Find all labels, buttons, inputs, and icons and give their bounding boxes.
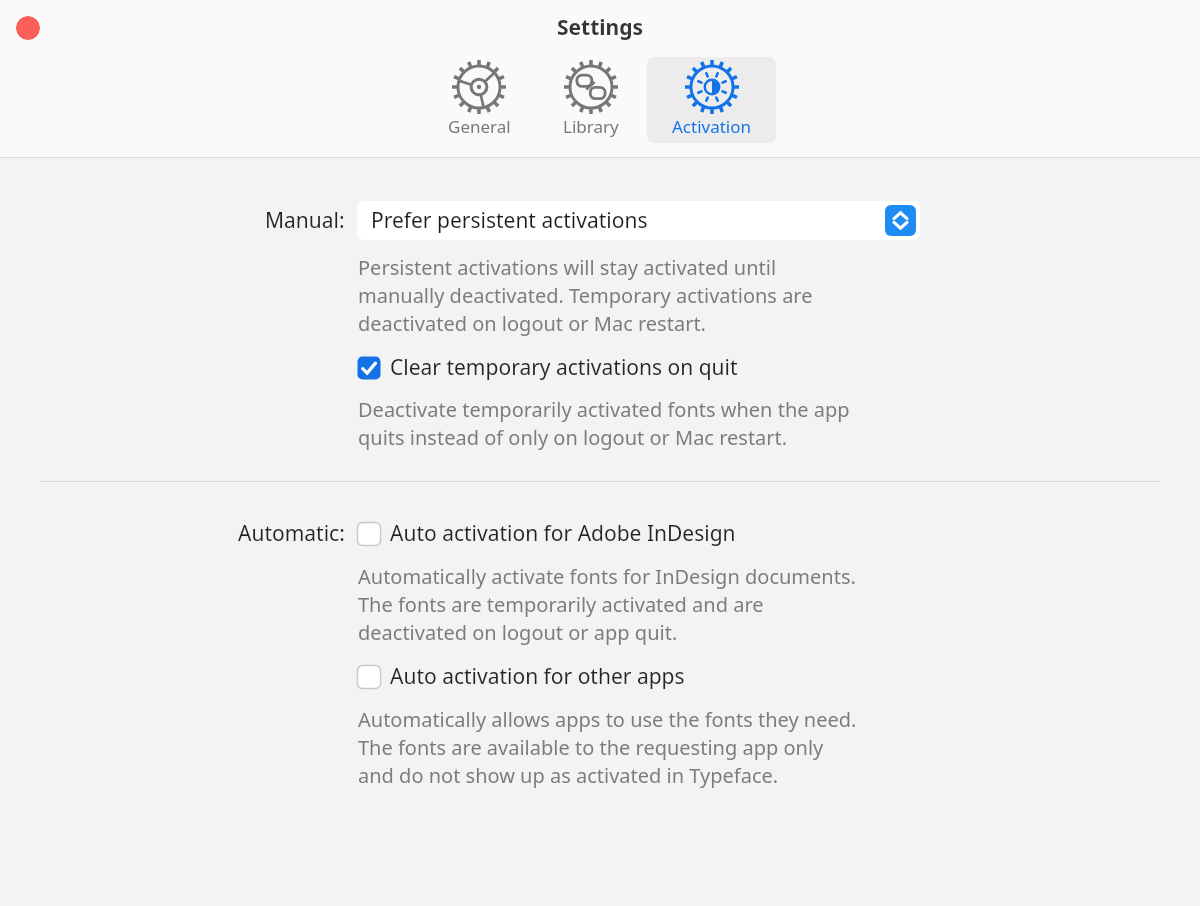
staticText: Activation xyxy=(672,115,752,138)
button[interactable]: Auto activation for Adobe InDesign xyxy=(357,519,736,548)
button[interactable]: General xyxy=(423,57,535,143)
staticText: General xyxy=(448,115,511,138)
staticText: Manual: xyxy=(265,206,345,235)
staticText: Deactivate temporarily activated fonts w… xyxy=(358,396,850,451)
staticText: Automatic: xyxy=(238,519,345,548)
button[interactable]: Clear temporary activations on quit xyxy=(357,353,738,382)
staticText: Clear temporary activations on quit xyxy=(390,353,738,382)
staticText: Automatically activate fonts for InDesig… xyxy=(358,563,856,646)
staticText: Automatically allows apps to use the fon… xyxy=(358,706,857,789)
staticText: Auto activation for other apps xyxy=(390,662,685,691)
button[interactable]: Close window xyxy=(16,16,40,40)
button[interactable]: Prefer persistent activations xyxy=(357,201,920,240)
button[interactable]: Activation xyxy=(647,57,776,143)
staticText: Prefer persistent activations xyxy=(371,206,648,235)
staticText: Persistent activations will stay activat… xyxy=(358,254,813,337)
button[interactable]: Auto activation for other apps xyxy=(357,662,685,691)
staticText: Auto activation for Adobe InDesign xyxy=(390,519,736,548)
staticText: Settings xyxy=(557,13,644,42)
staticText: Library xyxy=(563,115,619,138)
button[interactable]: Library xyxy=(535,57,647,143)
